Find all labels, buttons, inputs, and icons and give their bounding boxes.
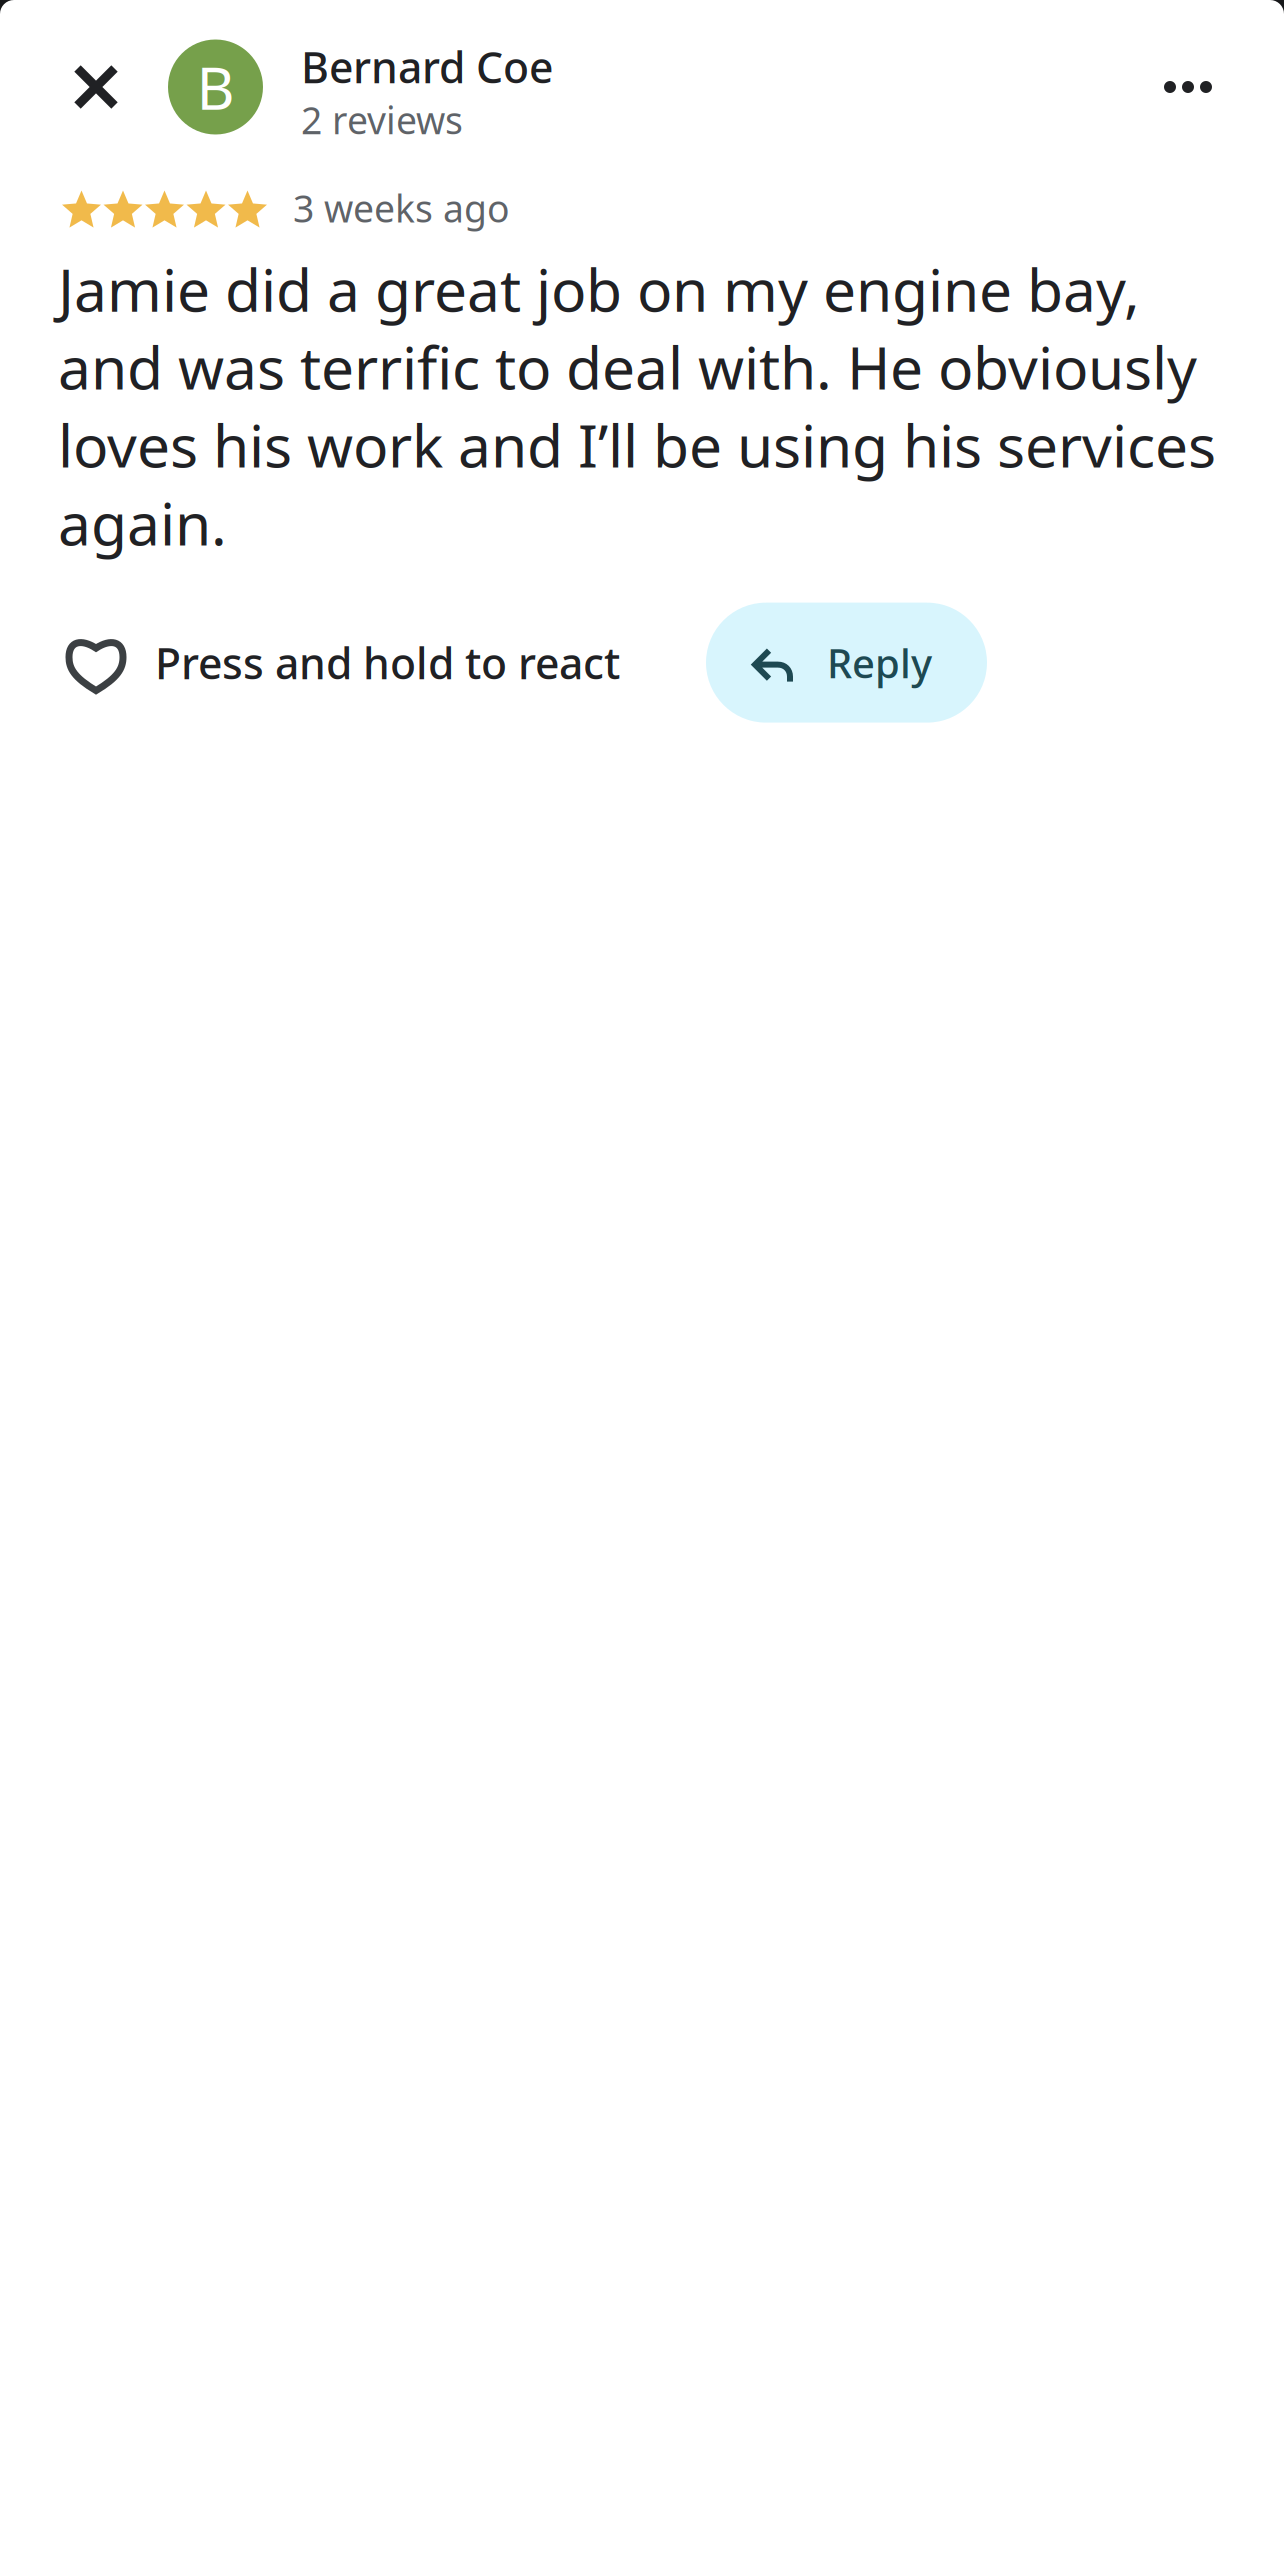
- staticText: loves his work and I’ll be using his ser…: [58, 406, 1216, 484]
- staticText: Bernard Coe: [301, 38, 553, 95]
- button[interactable]: Press and hold to react: [69, 603, 620, 723]
- staticText: Jamie did a great job on my engine bay,: [58, 250, 1140, 328]
- staticText: and was terrific to deal with. He obviou…: [58, 328, 1197, 406]
- staticText: Press and hold to react: [155, 634, 620, 691]
- button[interactable]: Close: [50, 32, 142, 142]
- staticText: B: [196, 48, 234, 126]
- button[interactable]: Reply: [706, 603, 987, 723]
- button[interactable]: More options: [1140, 32, 1236, 142]
- staticText: 2 reviews: [301, 95, 463, 145]
- staticText: 3 weeks ago: [293, 183, 510, 233]
- staticText: Reply: [827, 636, 932, 689]
- staticText: again.: [58, 484, 227, 562]
